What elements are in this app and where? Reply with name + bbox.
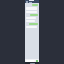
button[interactable]: Conversation top bar — [25, 0, 39, 3]
button[interactable]: Sent message — [29, 23, 38, 25]
button[interactable]: Navigation bar — [25, 62, 39, 64]
button[interactable]: Sent message — [30, 14, 38, 16]
button[interactable]: Sent message — [32, 4, 38, 6]
